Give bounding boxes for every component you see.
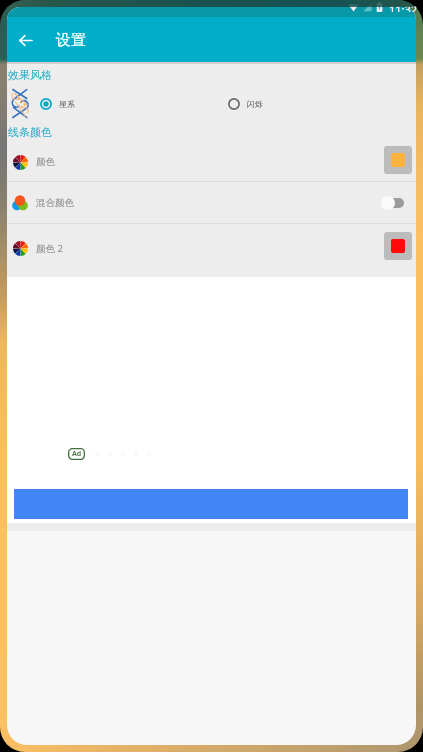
button[interactable]: 星系 [40,92,92,116]
button[interactable]: 混合颜色 [7,182,416,223]
staticText: 设置 [56,31,86,50]
staticText: 混合颜色 [36,197,74,209]
staticText: 11:32 [389,2,418,12]
staticText: Ad [72,449,82,459]
button[interactable]: Pick colour [384,146,412,174]
button[interactable]: 闪烁 [228,92,280,116]
staticText: 效果风格 [8,68,52,82]
staticText: 颜色 [36,156,55,168]
button[interactable]: 颜色 [7,143,416,181]
button[interactable]: Pick colour [384,232,412,260]
button[interactable]: Toggle blend colours [381,193,409,213]
staticText: 星系 [59,99,75,109]
staticText: 线条颜色 [8,125,52,139]
button[interactable]: Back [9,24,41,56]
staticText: 闪烁 [247,99,263,109]
button[interactable]: 颜色 2 [7,224,416,272]
staticText: 颜色 2 [36,242,63,255]
